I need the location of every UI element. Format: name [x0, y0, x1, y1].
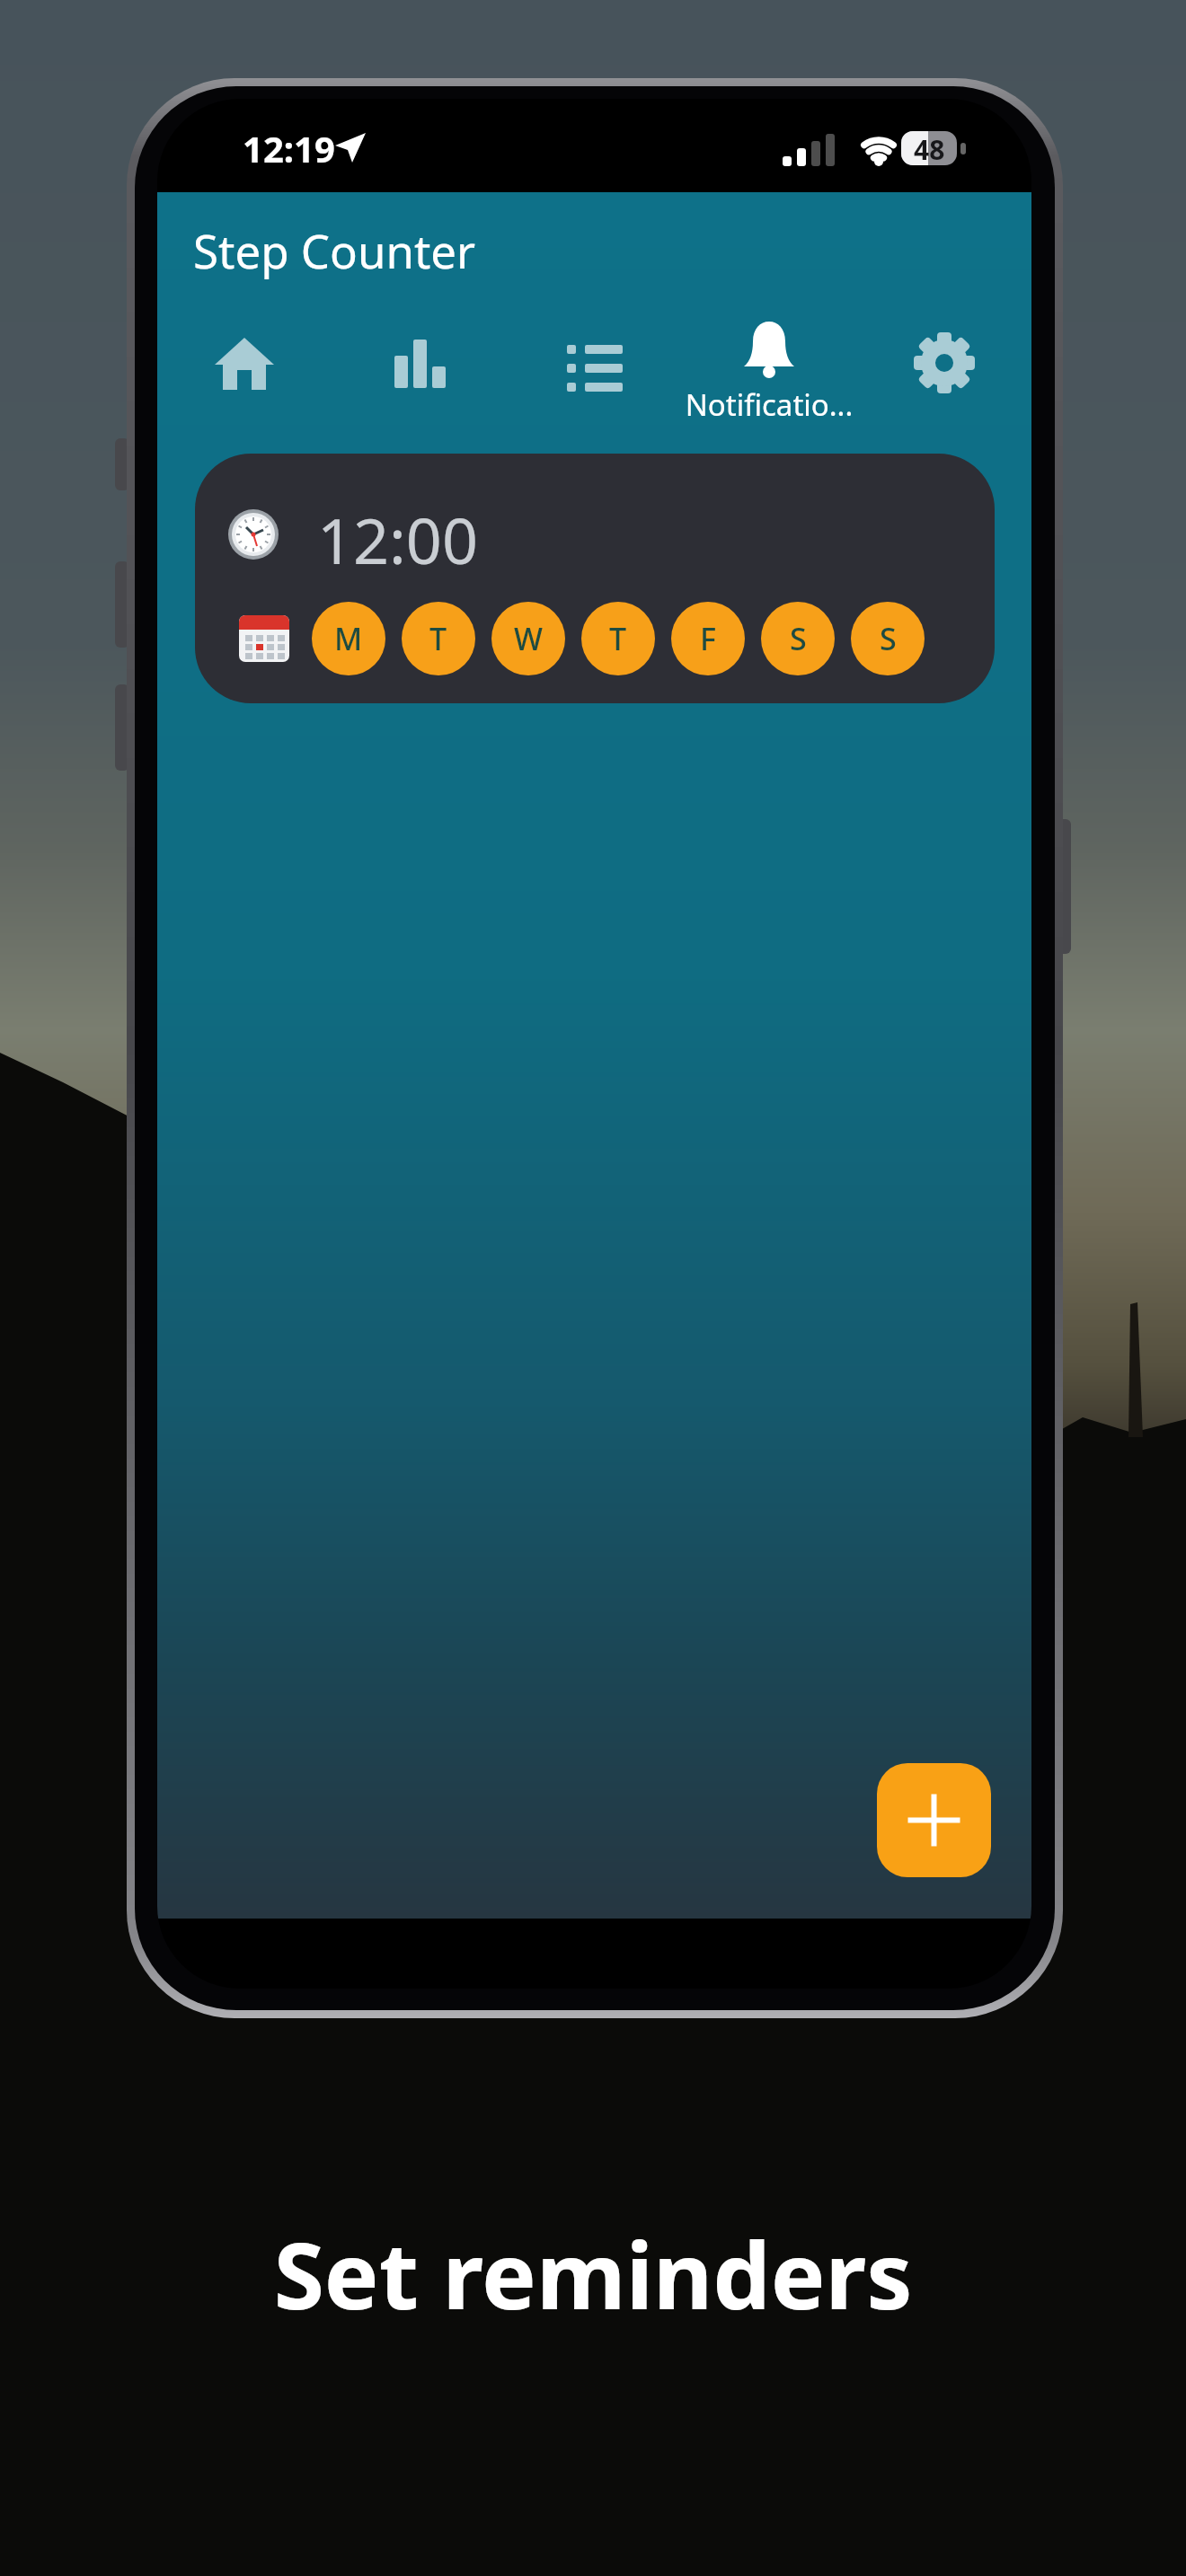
button[interactable]: Notificatio... [670, 307, 868, 433]
button[interactable]: 12:00 [195, 454, 995, 703]
button[interactable]: M [312, 602, 385, 675]
button[interactable]: S [761, 602, 835, 675]
staticText: W [514, 618, 543, 659]
button[interactable] [901, 320, 987, 406]
button[interactable]: F [671, 602, 745, 675]
staticText: M [334, 618, 363, 659]
staticText: F [700, 618, 716, 659]
button[interactable] [376, 320, 463, 406]
button[interactable] [201, 320, 288, 406]
button[interactable] [877, 1763, 991, 1877]
button[interactable]: W [491, 602, 565, 675]
button[interactable]: S [851, 602, 925, 675]
button[interactable]: T [581, 602, 655, 675]
staticText: 12:19 [243, 124, 335, 172]
staticText: S [790, 618, 807, 659]
staticText: Notificatio... [670, 384, 868, 425]
staticText: Step Counter [193, 219, 476, 281]
staticText: T [609, 618, 627, 659]
staticText: T [429, 618, 447, 659]
button[interactable]: T [402, 602, 475, 675]
staticText: Set reminders [0, 2211, 1186, 2336]
staticText: 12:00 [317, 497, 478, 582]
staticText: S [880, 618, 897, 659]
button[interactable] [551, 320, 637, 406]
staticText: 48 [914, 131, 945, 165]
